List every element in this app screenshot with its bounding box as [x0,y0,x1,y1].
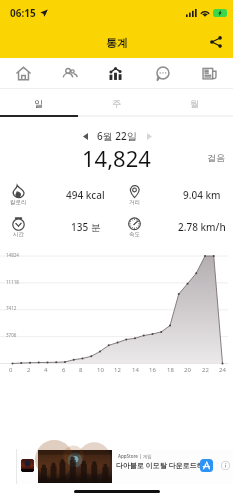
button[interactable]: News [186,58,233,88]
button[interactable]: Ad info [219,459,232,472]
staticText: 칼로리 [10,199,27,206]
staticText: AppStore | 게임 [118,453,152,459]
staticText: 14,824 [82,143,151,171]
staticText: 9.04 km [183,188,221,202]
staticText: 7412 [6,305,17,311]
staticText: 주 [112,98,121,109]
staticText: 3706 [6,332,17,338]
staticText: 22 [202,366,209,374]
button[interactable]: Statistics [92,58,139,88]
staticText: 6월 22일 [97,129,137,143]
staticText: 06:15 [10,6,36,20]
staticText: 12 [114,366,121,374]
staticText: 걸음 [207,152,225,163]
staticText: 20 [184,366,191,374]
staticText: 월 [190,98,199,109]
button[interactable]: Friends [46,58,92,88]
button[interactable]: Next day [140,127,158,145]
staticText: 2.78 km/h [178,220,226,234]
staticText: 10 [97,366,104,374]
staticText: 11118 [6,279,19,285]
staticText: 14824 [6,252,19,258]
button[interactable]: 속도 [116,213,233,245]
staticText: 일 [34,98,43,109]
staticText: 시간 [13,231,24,238]
staticText: 18 [167,366,174,374]
button[interactable]: 일 [0,89,77,117]
staticText: 16 [149,366,156,374]
staticText: 4 [44,366,48,374]
staticText: 24 [219,366,226,374]
staticText: 14 [132,366,139,374]
staticText: 0 [9,366,13,374]
button[interactable]: 칼로리 [0,181,117,213]
button[interactable]: 시간 [0,213,117,245]
staticText: 다아블로 이모탈 다운로드하기 [116,461,211,471]
staticText: 거리 [129,199,140,206]
button[interactable]: 월 [155,89,233,117]
staticText: 속도 [129,231,140,238]
staticText: 통계 [106,36,128,50]
staticText: 494 kcal [66,188,105,202]
button[interactable]: Previous day [76,127,94,145]
button[interactable]: Share [206,32,226,52]
button[interactable] [16,449,233,484]
staticText: 135 분 [71,220,101,234]
staticText: 2 [27,366,31,374]
button[interactable]: Chat [139,58,186,88]
staticText: 8 [79,366,83,374]
button[interactable]: 주 [77,89,155,117]
button[interactable]: 거리 [116,181,233,213]
button[interactable]: Home [0,58,46,88]
staticText: 6 [62,366,66,374]
button[interactable]: Open App Store [200,459,213,472]
